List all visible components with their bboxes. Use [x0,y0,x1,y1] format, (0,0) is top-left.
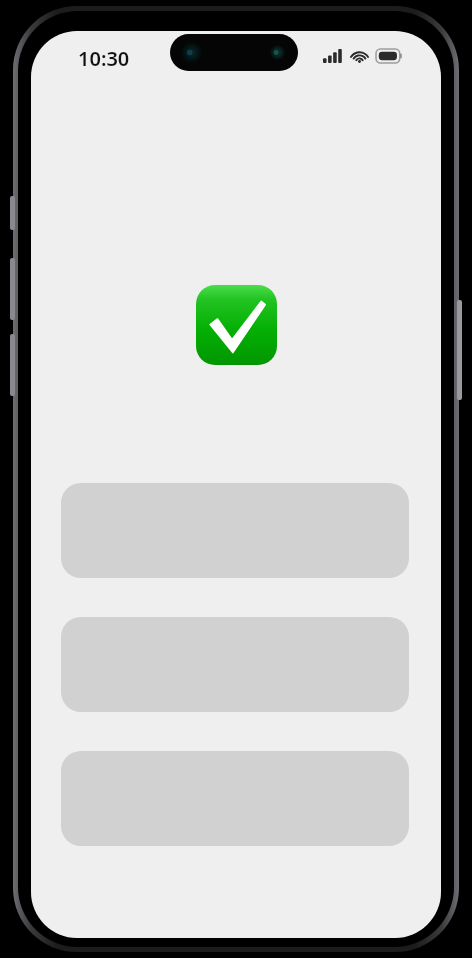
staticText: 10:30 [78,45,130,72]
button[interactable]: Completed [196,285,277,365]
